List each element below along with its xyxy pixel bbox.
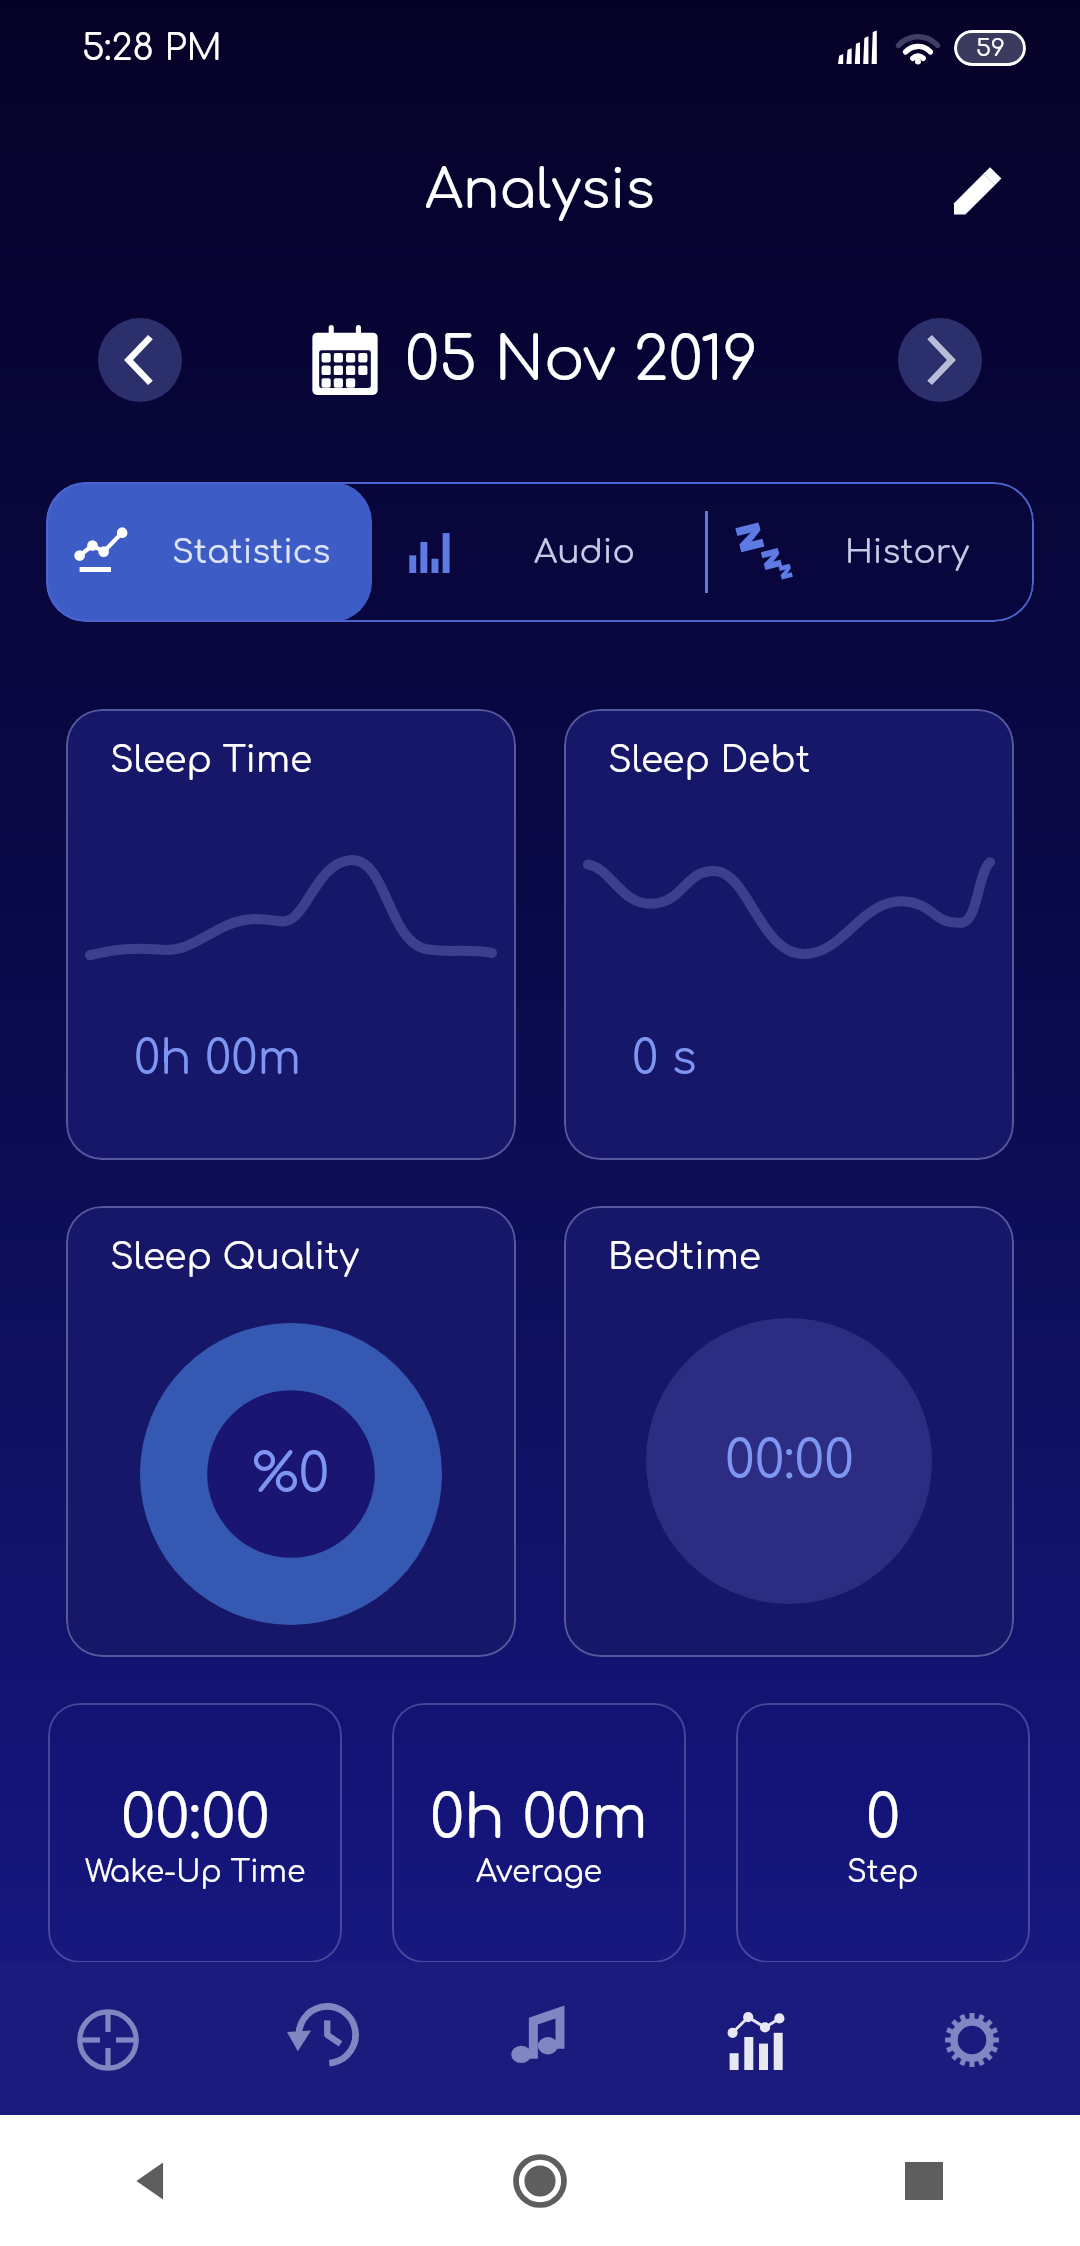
staticText: Analysis bbox=[425, 160, 655, 220]
staticText: 0 bbox=[866, 1785, 901, 1852]
staticText: Wake-Up Time bbox=[85, 1856, 306, 1889]
staticText: 0h 00m bbox=[134, 1033, 301, 1084]
button[interactable]: Edit bbox=[938, 150, 1018, 230]
staticText: 0h 00m bbox=[430, 1785, 648, 1852]
button[interactable]: 0h 00m bbox=[392, 1703, 686, 1963]
button[interactable]: Statistics bbox=[648, 1962, 864, 2115]
staticText: Sleep Time bbox=[110, 740, 313, 780]
button[interactable]: Sleep Quality bbox=[66, 1206, 516, 1657]
button[interactable]: Previous day bbox=[98, 318, 182, 402]
button[interactable]: Bedtime bbox=[564, 1206, 1014, 1657]
button[interactable] bbox=[706, 482, 1034, 622]
button[interactable]: 00:00 bbox=[48, 1703, 342, 1963]
staticText: 59 bbox=[976, 35, 1005, 62]
staticText: 5:28 PM bbox=[82, 28, 222, 68]
button[interactable]: 05 Nov 2019 bbox=[311, 325, 758, 395]
staticText: Statistics bbox=[172, 534, 331, 571]
staticText: Sleep Quality bbox=[110, 1237, 360, 1277]
staticText: %0 bbox=[252, 1444, 330, 1504]
staticText: Step bbox=[847, 1856, 919, 1889]
staticText: History bbox=[845, 534, 969, 571]
staticText: Bedtime bbox=[608, 1237, 761, 1277]
button[interactable]: Next day bbox=[898, 318, 982, 402]
staticText: 05 Nov 2019 bbox=[405, 327, 758, 394]
staticText: Average bbox=[476, 1856, 602, 1889]
staticText: Sleep Debt bbox=[608, 740, 811, 780]
button[interactable] bbox=[46, 482, 372, 622]
staticText: 00:00 bbox=[725, 1432, 854, 1490]
button[interactable]: History bbox=[216, 1962, 432, 2115]
button[interactable]: Sleep Time bbox=[66, 709, 516, 1160]
button[interactable]: Sleep Debt bbox=[564, 709, 1014, 1160]
staticText: Audio bbox=[534, 534, 635, 571]
button[interactable]: 0 bbox=[736, 1703, 1030, 1963]
button[interactable]: Music bbox=[432, 1962, 648, 2115]
button[interactable]: Settings bbox=[864, 1962, 1080, 2115]
button[interactable] bbox=[372, 482, 706, 622]
button[interactable]: Timer bbox=[0, 1962, 216, 2115]
staticText: 00:00 bbox=[121, 1785, 270, 1852]
staticText: 0 s bbox=[632, 1033, 697, 1084]
